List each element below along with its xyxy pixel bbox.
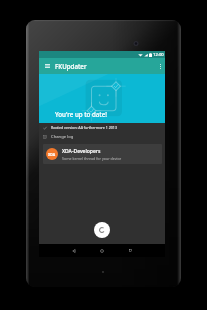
button[interactable]: Home bbox=[88, 244, 116, 257]
button[interactable]: More options bbox=[155, 58, 165, 74]
button[interactable]: Change log bbox=[39, 132, 165, 142]
button[interactable]: Open navigation drawer bbox=[41, 60, 53, 72]
button[interactable]: XDA bbox=[43, 144, 162, 164]
staticText: Change log bbox=[51, 134, 74, 140]
staticText: XDA-Developers bbox=[62, 148, 101, 155]
button[interactable]: You're up to date! bbox=[39, 74, 165, 123]
staticText: You're up to date! bbox=[55, 110, 107, 118]
staticText: 12:00 bbox=[153, 52, 164, 58]
button[interactable]: Back bbox=[60, 244, 88, 257]
staticText: Some kernel thread for your device bbox=[62, 156, 122, 161]
staticText: FKUpdater bbox=[55, 62, 87, 70]
button[interactable]: Recent apps bbox=[116, 244, 144, 257]
button[interactable]: Rooted version: AA furthermore 1 2013 bbox=[39, 123, 165, 132]
staticText: XDA bbox=[48, 152, 56, 157]
button[interactable]: Check for updates bbox=[94, 222, 110, 238]
staticText: Rooted version: AA furthermore 1 2013 bbox=[51, 125, 117, 130]
